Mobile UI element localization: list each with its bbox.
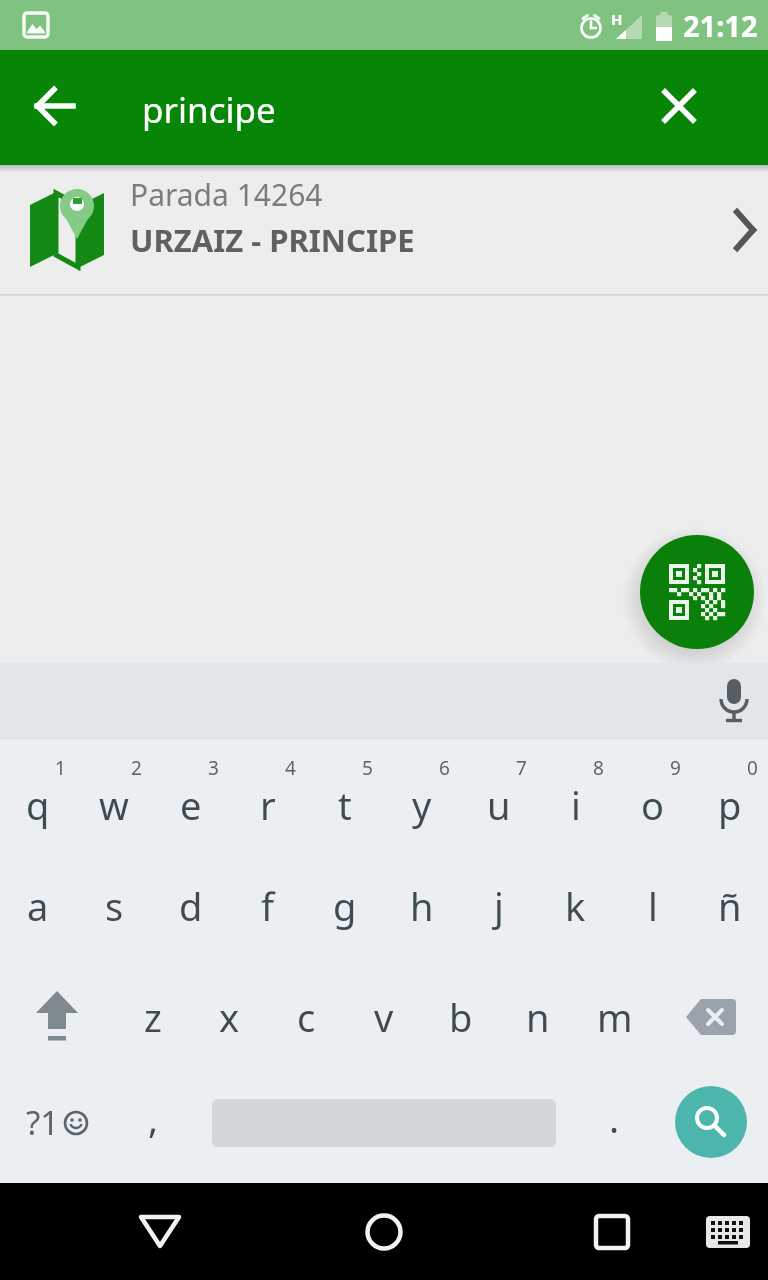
- button[interactable]: ñ: [691, 850, 768, 961]
- button[interactable]: x: [191, 961, 268, 1072]
- button[interactable]: 3: [152, 739, 229, 850]
- button[interactable]: [653, 961, 768, 1072]
- staticText: i: [571, 779, 581, 831]
- staticText: a: [27, 880, 49, 932]
- staticText: z: [144, 991, 162, 1043]
- staticText: principe: [142, 86, 276, 134]
- button[interactable]: a: [0, 850, 76, 961]
- button[interactable]: ,: [115, 1072, 192, 1183]
- staticText: p: [718, 779, 742, 831]
- button[interactable]: 7: [460, 739, 537, 850]
- button[interactable]: v: [345, 961, 422, 1072]
- button[interactable]: [344, 1197, 424, 1267]
- staticText: 3: [208, 755, 219, 781]
- staticText: o: [641, 779, 664, 831]
- staticText: h: [410, 880, 434, 932]
- button[interactable]: 6: [383, 739, 460, 850]
- button[interactable]: .: [576, 1072, 653, 1183]
- staticText: 1: [55, 755, 66, 781]
- button[interactable]: b: [422, 961, 499, 1072]
- staticText: .: [609, 1092, 620, 1144]
- button[interactable]: 4: [229, 739, 306, 850]
- button[interactable]: [120, 1197, 200, 1267]
- staticText: 8: [593, 755, 604, 781]
- button[interactable]: z: [114, 961, 191, 1072]
- staticText: y: [412, 779, 432, 831]
- staticText: ,: [148, 1092, 159, 1144]
- staticText: b: [449, 991, 473, 1043]
- button[interactable]: s: [76, 850, 152, 961]
- button[interactable]: c: [268, 961, 345, 1072]
- button[interactable]: ?1: [0, 1072, 115, 1183]
- staticText: ñ: [718, 880, 742, 932]
- staticText: r: [260, 779, 276, 831]
- staticText: 4: [285, 755, 296, 781]
- staticText: g: [333, 880, 357, 932]
- staticText: f: [261, 880, 275, 932]
- staticText: u: [487, 779, 511, 831]
- staticText: ?1: [26, 1100, 60, 1145]
- button[interactable]: 9: [614, 739, 691, 850]
- staticText: d: [179, 880, 203, 932]
- staticText: t: [338, 779, 352, 831]
- staticText: w: [99, 779, 129, 831]
- button[interactable]: n: [499, 961, 576, 1072]
- button[interactable]: [192, 1072, 576, 1183]
- staticText: 5: [362, 755, 373, 781]
- staticText: q: [26, 779, 50, 831]
- staticText: c: [297, 991, 316, 1043]
- button[interactable]: [708, 671, 760, 731]
- staticText: H: [611, 9, 623, 29]
- staticText: x: [219, 991, 240, 1043]
- staticText: 7: [516, 755, 527, 781]
- staticText: j: [494, 880, 504, 932]
- button[interactable]: l: [614, 850, 691, 961]
- staticText: 2: [131, 755, 142, 781]
- staticText: k: [565, 880, 586, 932]
- button[interactable]: h: [383, 850, 460, 961]
- staticText: s: [105, 880, 124, 932]
- staticText: m: [597, 991, 633, 1043]
- button[interactable]: j: [460, 850, 537, 961]
- button[interactable]: Parada 14264: [0, 165, 768, 294]
- staticText: URZAIZ - PRINCIPE: [130, 219, 415, 261]
- button[interactable]: 8: [537, 739, 614, 850]
- button[interactable]: d: [152, 850, 229, 961]
- button[interactable]: k: [537, 850, 614, 961]
- button[interactable]: g: [306, 850, 383, 961]
- staticText: 6: [439, 755, 450, 781]
- staticText: v: [374, 991, 394, 1043]
- button[interactable]: [23, 74, 87, 138]
- button[interactable]: [647, 74, 711, 138]
- staticText: l: [648, 880, 658, 932]
- button[interactable]: [695, 1197, 761, 1267]
- button[interactable]: [572, 1197, 652, 1267]
- button[interactable]: f: [229, 850, 306, 961]
- staticText: n: [526, 991, 550, 1043]
- button[interactable]: 5: [306, 739, 383, 850]
- button[interactable]: [622, 517, 768, 667]
- button[interactable]: m: [576, 961, 653, 1072]
- staticText: e: [180, 779, 202, 831]
- button[interactable]: 1: [0, 739, 76, 850]
- button[interactable]: 0: [691, 739, 768, 850]
- staticText: Parada 14264: [130, 174, 323, 215]
- staticText: 9: [670, 755, 681, 781]
- button[interactable]: 2: [76, 739, 152, 850]
- staticText: 0: [747, 755, 758, 781]
- button[interactable]: [653, 1072, 768, 1183]
- staticText: 21:12: [683, 6, 758, 45]
- button[interactable]: [0, 961, 114, 1072]
